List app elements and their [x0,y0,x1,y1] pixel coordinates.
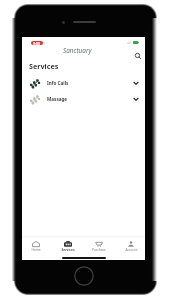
staticText: Massage [47,96,68,102]
button[interactable]: Search [132,50,143,61]
button[interactable]: Massage [22,91,145,107]
staticText: Purchase [92,248,106,252]
button[interactable]: Home [22,241,50,252]
staticText: Info Calls [47,80,69,86]
staticText: Home [31,248,41,252]
staticText: Services [29,61,59,71]
staticText: Account [125,248,138,252]
button[interactable]: Services [54,241,82,252]
staticText: 9:55 [33,41,41,45]
button[interactable]: Info Calls [22,75,145,91]
button[interactable]: Purchase [85,241,113,252]
staticText: Services [61,248,75,252]
staticText: Sanctuary [63,46,92,55]
button[interactable]: Account [117,241,145,252]
